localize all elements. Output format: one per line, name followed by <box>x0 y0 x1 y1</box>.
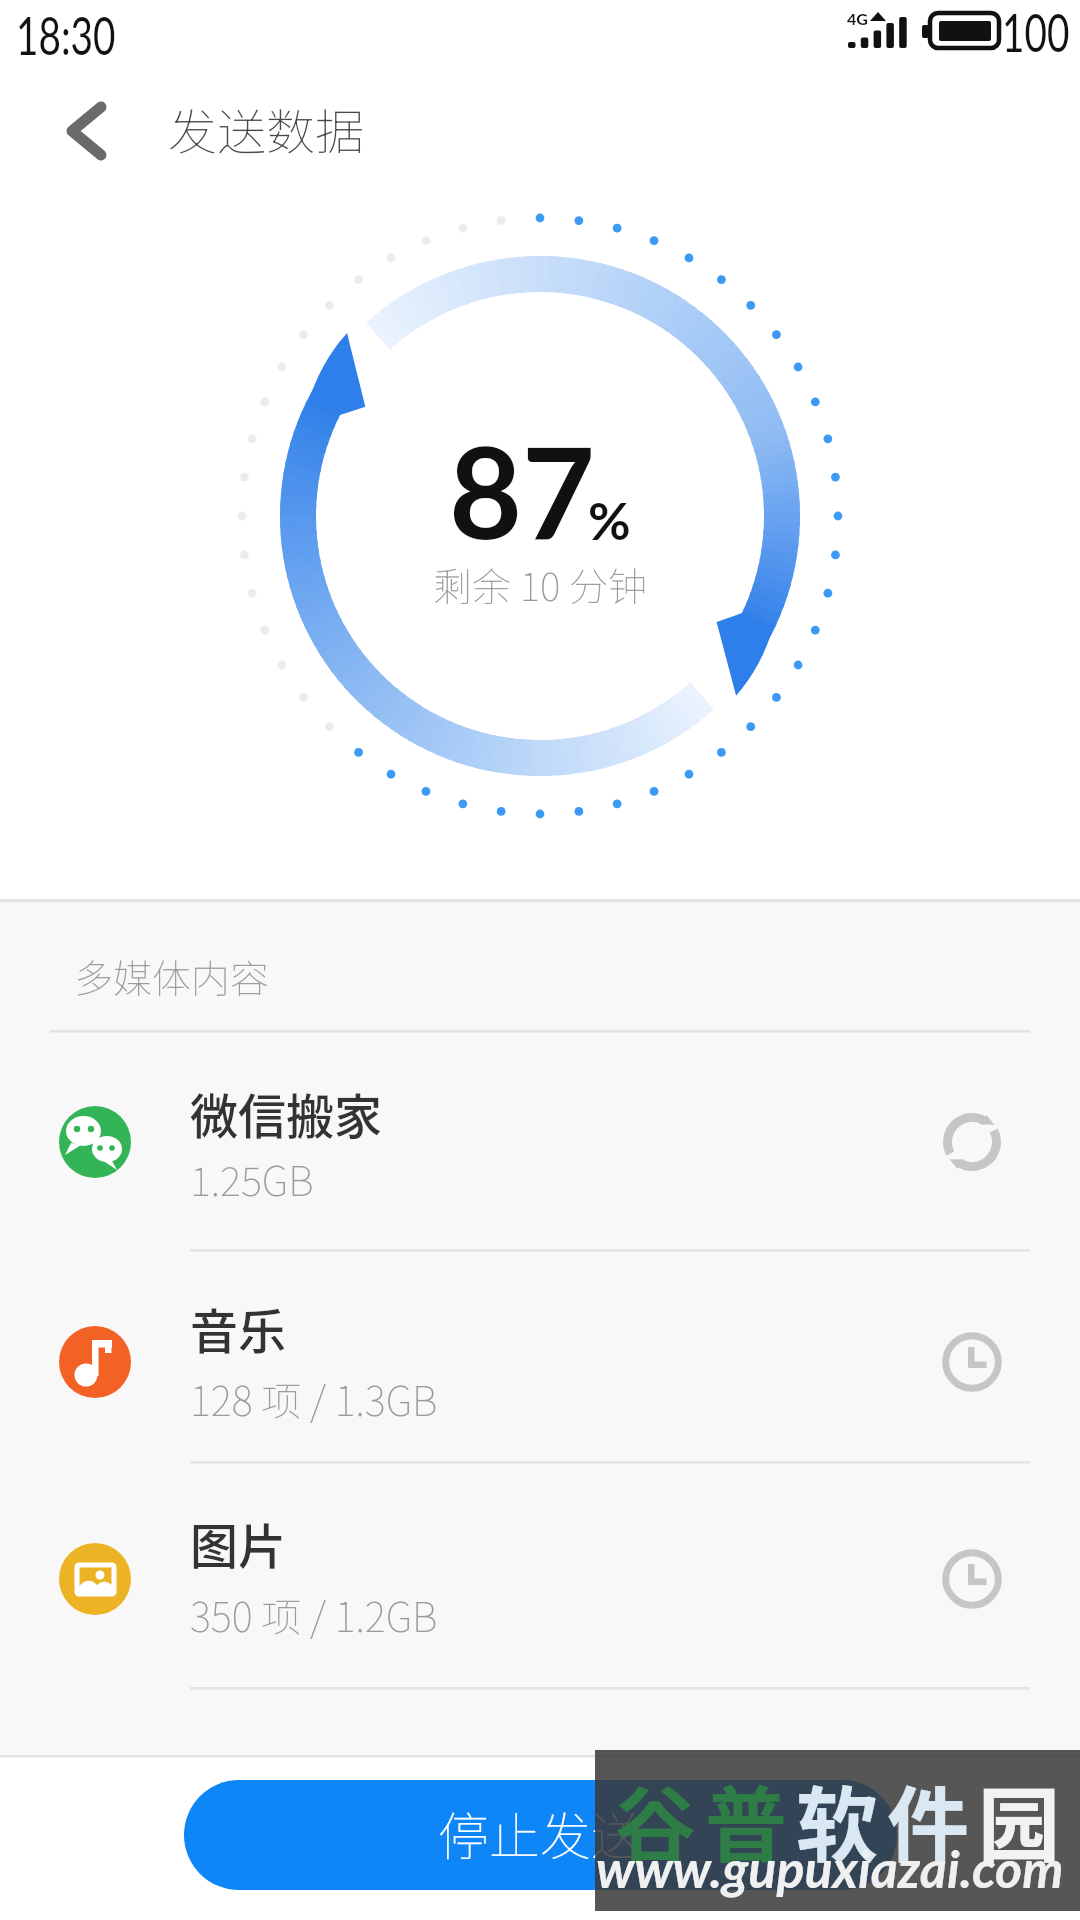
staticText: 87 <box>449 415 596 566</box>
staticText: 128 项 / 1.3GB <box>190 1370 438 1428</box>
staticText: 图片 <box>190 1508 287 1578</box>
staticText: www.gupuxiazai.com <box>596 1837 1064 1899</box>
staticText: 1.25GB <box>190 1150 314 1208</box>
staticText: 多媒体内容 <box>74 948 270 1004</box>
staticText: % <box>588 489 631 551</box>
staticText: 剩余 10 分钟 <box>0 556 1080 612</box>
staticText: 发送数据 <box>168 93 365 164</box>
staticText: 微信搬家 <box>190 1078 383 1148</box>
staticText: 音乐 <box>190 1293 287 1363</box>
staticText: 4G <box>847 9 868 28</box>
staticText: 350 项 / 1.2GB <box>190 1586 438 1644</box>
staticText: 停止发送 <box>0 1796 1080 1870</box>
staticText: 谷普软件园 <box>614 1760 1070 1879</box>
